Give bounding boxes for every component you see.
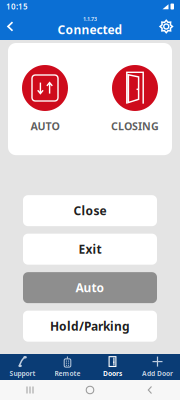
button[interactable]: AUTO (8, 65, 82, 133)
button[interactable]: Add Door (135, 354, 180, 380)
button[interactable]: Back (3, 14, 22, 39)
staticText: AUTO (30, 119, 59, 133)
staticText: Close (73, 203, 106, 219)
staticText: Auto (75, 280, 104, 296)
button[interactable]: Close (23, 195, 157, 226)
staticText: Add Door (142, 369, 173, 378)
button[interactable]: Settings (153, 14, 177, 39)
staticText: Connected (57, 21, 122, 37)
button[interactable]: Doors (90, 354, 135, 380)
button[interactable]: Hold/Parking (23, 311, 157, 342)
staticText: Exit (78, 241, 101, 257)
staticText: Remote (54, 369, 80, 378)
staticText: Support (9, 369, 35, 378)
staticText: Hold/Parking (50, 318, 130, 334)
staticText: CLOSING (111, 119, 159, 133)
staticText: 1.1.73 (83, 15, 97, 23)
button[interactable]: Remote (45, 354, 90, 380)
staticText: 10:15 (6, 1, 28, 12)
button[interactable]: Exit (23, 234, 157, 265)
button[interactable]: CLOSING (98, 65, 172, 133)
button[interactable]: Support (0, 354, 45, 380)
button[interactable]: Auto (23, 272, 157, 303)
staticText: Doors (103, 369, 122, 378)
